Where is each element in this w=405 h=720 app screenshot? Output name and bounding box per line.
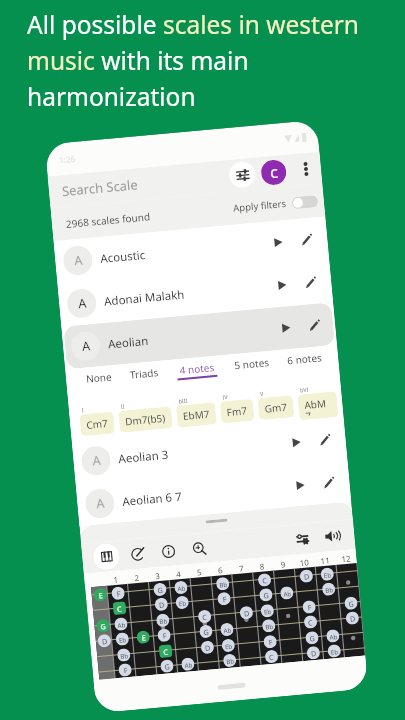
button[interactable]: Edit scale bbox=[125, 542, 149, 566]
button[interactable]: A bbox=[59, 259, 331, 327]
button[interactable]: C bbox=[112, 601, 127, 615]
button[interactable]: G bbox=[259, 588, 273, 602]
button[interactable]: C bbox=[158, 644, 173, 658]
button[interactable]: Ab bbox=[174, 580, 188, 595]
button[interactable]: C bbox=[303, 615, 318, 629]
button[interactable]: Edit bbox=[316, 431, 334, 449]
button[interactable]: 4 notes bbox=[167, 359, 227, 384]
button[interactable]: Edit bbox=[305, 316, 324, 335]
button[interactable]: Triads bbox=[120, 364, 169, 389]
staticText: D bbox=[303, 571, 310, 582]
button[interactable]: Eb bbox=[260, 604, 274, 618]
button[interactable]: F bbox=[302, 600, 316, 614]
staticText: None bbox=[85, 369, 113, 386]
button[interactable]: Bb bbox=[223, 653, 237, 667]
button[interactable]: G bbox=[305, 631, 319, 645]
button[interactable]: Bb bbox=[216, 577, 230, 591]
button[interactable]: F bbox=[118, 663, 132, 677]
button[interactable]: Info bbox=[156, 539, 180, 563]
staticText: Fm7 bbox=[226, 403, 248, 419]
staticText: Ab bbox=[223, 626, 232, 634]
button[interactable]: Bb bbox=[117, 648, 131, 662]
button[interactable]: Edit bbox=[298, 230, 316, 249]
button[interactable]: Play bbox=[287, 433, 305, 452]
button[interactable]: Piano bbox=[92, 542, 120, 571]
staticText: D bbox=[158, 600, 165, 610]
button[interactable]: D bbox=[306, 646, 320, 660]
button[interactable]: Play bbox=[277, 319, 295, 337]
button[interactable]: Bb bbox=[156, 613, 170, 627]
button[interactable]: AbM7 bbox=[297, 391, 339, 420]
button[interactable]: 7 notes bbox=[330, 349, 339, 369]
button[interactable]: D bbox=[239, 606, 253, 620]
button[interactable]: 5 notes bbox=[225, 354, 279, 379]
staticText: 2 bbox=[134, 572, 140, 583]
button[interactable]: G bbox=[96, 619, 110, 633]
button[interactable]: Play bbox=[269, 233, 287, 252]
staticText: Aeolian 3 bbox=[118, 447, 169, 467]
button[interactable]: Tuning settings bbox=[292, 528, 313, 550]
button[interactable]: F bbox=[111, 586, 125, 600]
button[interactable]: F bbox=[263, 635, 277, 649]
button[interactable]: Zoom in bbox=[187, 536, 211, 560]
button[interactable]: 6 notes bbox=[278, 349, 332, 374]
button[interactable]: A bbox=[74, 417, 345, 484]
button[interactable]: A bbox=[63, 302, 335, 369]
button[interactable]: Eb bbox=[175, 595, 189, 609]
button[interactable]: G bbox=[344, 596, 358, 610]
button[interactable]: D bbox=[299, 569, 313, 583]
button[interactable]: Ab bbox=[280, 586, 294, 600]
button[interactable]: Ab bbox=[220, 622, 234, 637]
button[interactable]: C bbox=[264, 649, 279, 664]
button[interactable]: Gm7 bbox=[258, 395, 294, 420]
button[interactable]: D bbox=[345, 611, 359, 625]
button[interactable]: Ab bbox=[181, 657, 195, 671]
staticText: 4 bbox=[176, 568, 182, 579]
button[interactable]: A bbox=[78, 460, 349, 527]
button[interactable]: F bbox=[217, 592, 231, 606]
button[interactable]: D bbox=[200, 640, 214, 654]
button[interactable]: Eb bbox=[320, 567, 334, 581]
button[interactable]: C bbox=[198, 609, 212, 623]
button[interactable]: F bbox=[157, 628, 171, 642]
button[interactable]: Play bbox=[291, 476, 309, 495]
staticText: C bbox=[269, 164, 279, 181]
button[interactable]: A bbox=[55, 217, 327, 284]
staticText: AbM7 bbox=[304, 396, 332, 416]
button[interactable]: Edit bbox=[301, 273, 320, 292]
staticText: Bb bbox=[159, 616, 168, 625]
staticText: 8 bbox=[259, 560, 265, 572]
button[interactable]: Ab bbox=[326, 629, 340, 643]
staticText: bIII bbox=[178, 397, 188, 404]
staticText: Bb bbox=[120, 651, 129, 660]
button[interactable]: Play bbox=[273, 276, 291, 294]
button[interactable]: More options bbox=[296, 159, 316, 179]
button[interactable]: Bb bbox=[322, 582, 336, 596]
button[interactable]: Sound bbox=[320, 524, 344, 548]
staticText: G bbox=[157, 585, 164, 595]
button[interactable]: Bb bbox=[262, 619, 276, 633]
button[interactable]: Ab bbox=[114, 617, 128, 631]
button[interactable]: Edit bbox=[320, 473, 338, 492]
button[interactable]: Eb bbox=[327, 644, 341, 658]
button[interactable]: E bbox=[136, 630, 150, 644]
button[interactable]: Fm7 bbox=[220, 399, 255, 424]
button[interactable]: None bbox=[76, 369, 122, 392]
button[interactable]: Filter settings bbox=[228, 161, 256, 189]
button[interactable]: Apply filters toggle bbox=[291, 195, 318, 209]
button[interactable]: Cm7 bbox=[79, 411, 115, 436]
button[interactable]: Eb bbox=[115, 632, 129, 646]
button[interactable]: C bbox=[260, 159, 287, 186]
button[interactable]: EbM7 bbox=[176, 402, 217, 428]
button[interactable]: C bbox=[257, 573, 272, 587]
staticText: 12 bbox=[341, 552, 352, 564]
button[interactable]: G bbox=[160, 659, 174, 673]
button[interactable]: Eb bbox=[221, 638, 235, 652]
button[interactable]: D bbox=[154, 597, 168, 611]
button[interactable]: G bbox=[199, 624, 213, 638]
button[interactable]: E bbox=[93, 588, 107, 602]
button[interactable]: D bbox=[97, 634, 111, 648]
button[interactable]: Dm7(b5) bbox=[118, 406, 173, 433]
button[interactable]: G bbox=[153, 582, 167, 596]
staticText: Ab bbox=[329, 632, 338, 641]
